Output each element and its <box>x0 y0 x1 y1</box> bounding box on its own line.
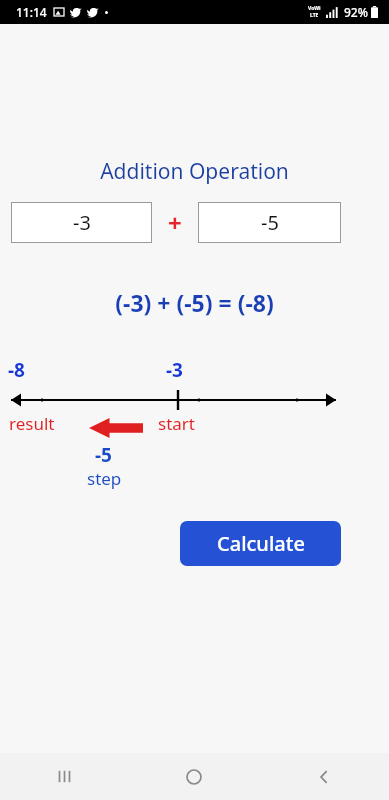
staticText: 92% <box>344 4 368 20</box>
staticText: -5 <box>261 209 279 236</box>
button[interactable]: Recents <box>0 753 129 800</box>
staticText: Addition Operation <box>0 157 389 186</box>
staticText: LTE <box>310 12 319 19</box>
button[interactable]: Back <box>259 753 389 800</box>
button[interactable]: -3 <box>11 202 152 243</box>
staticText: start <box>158 412 195 435</box>
staticText: 11:14 <box>16 4 47 20</box>
button[interactable]: Calculate <box>180 521 341 566</box>
staticText: step <box>87 467 122 490</box>
staticText: result <box>9 412 55 435</box>
staticText: Calculate <box>217 530 305 557</box>
staticText: -3 <box>166 357 183 383</box>
staticText: -8 <box>8 357 25 383</box>
staticText: VoWi <box>308 5 321 12</box>
button[interactable]: Home <box>129 753 259 800</box>
staticText: (-3) + (-5) = (-8) <box>0 287 389 318</box>
other: Step left by 5 <box>89 418 143 438</box>
staticText: -3 <box>73 209 91 236</box>
staticText: + <box>168 206 182 239</box>
staticText: -5 <box>95 442 112 468</box>
button[interactable]: -5 <box>198 202 341 243</box>
